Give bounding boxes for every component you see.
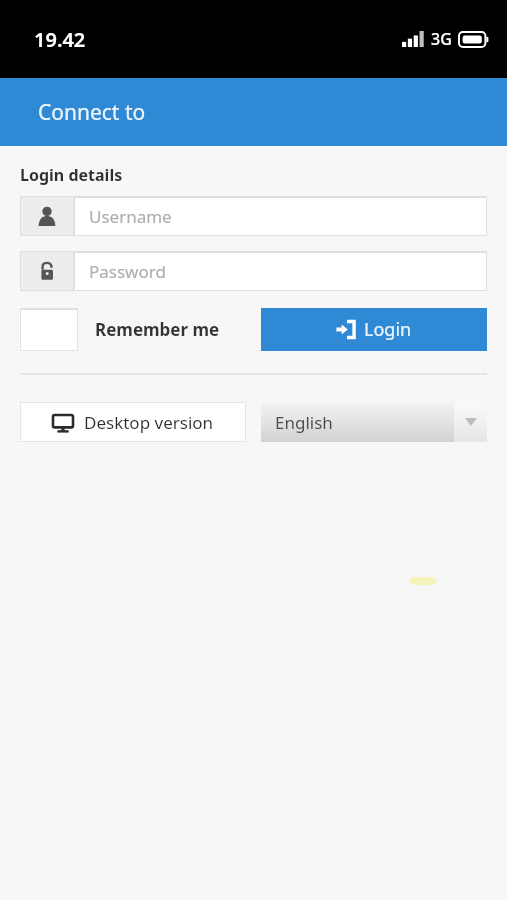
button[interactable]: Connect to	[0, 78, 507, 146]
staticText: Remember me	[95, 318, 220, 341]
staticText: Connect to	[38, 98, 146, 127]
staticText: Login details	[20, 164, 123, 186]
staticText: Password	[89, 260, 166, 283]
staticText: Username	[89, 205, 172, 228]
staticText: 19.42	[34, 26, 86, 53]
button[interactable]: Username	[20, 196, 487, 236]
button[interactable]: Desktop version	[20, 402, 246, 442]
button[interactable]: Login	[261, 308, 487, 351]
staticText: 3G	[431, 28, 452, 50]
button[interactable]: Select language	[261, 402, 487, 442]
staticText: English	[275, 411, 333, 434]
button[interactable]: Password	[20, 251, 487, 291]
staticText: Desktop version	[84, 411, 214, 434]
button[interactable]: Remember me	[20, 308, 220, 351]
staticText: Login	[364, 317, 412, 342]
